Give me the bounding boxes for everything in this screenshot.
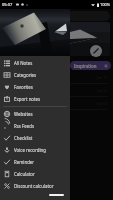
- staticText: Websites: [14, 111, 33, 117]
- staticText: Work: [8, 63, 19, 69]
- button[interactable]: Checklist: [0, 132, 70, 144]
- staticText: Rss Feeds: [14, 123, 35, 129]
- button[interactable]: Voice recording: [0, 144, 70, 156]
- button[interactable]: Inspiration: [70, 61, 111, 70]
- staticText: Search your notes: [13, 13, 49, 19]
- other: Search: [6, 14, 11, 19]
- staticText: Inspiration: [74, 63, 97, 69]
- staticText: Discount calculator: [14, 183, 54, 189]
- staticText: Reminder: [14, 159, 35, 165]
- staticText: Favorites: [14, 84, 33, 90]
- button[interactable]: Meeting notes: [0, 73, 113, 86]
- button[interactable]: Project ideas: [0, 99, 113, 112]
- staticText: Voice recording: [14, 147, 46, 153]
- button[interactable]: Categories: [0, 69, 70, 81]
- staticText: 100%: [100, 2, 111, 7]
- button[interactable]: New note: [90, 45, 102, 57]
- staticText: Project ideas: [5, 101, 31, 107]
- staticText: Shopping list: [5, 88, 31, 94]
- staticText: Meeting notes: [5, 75, 34, 81]
- button[interactable]: Rss Feeds: [0, 120, 70, 132]
- button[interactable]: Search: [3, 11, 110, 21]
- button[interactable]: Calculator: [0, 168, 70, 180]
- staticText: All Notes: [14, 60, 33, 66]
- button[interactable]: All Notes: [0, 57, 70, 69]
- staticText: Checklist: [14, 135, 33, 141]
- button[interactable]: Reminder: [0, 156, 70, 168]
- staticText: Calculator: [14, 171, 35, 177]
- button[interactable]: Work: [4, 61, 34, 70]
- button[interactable]: Export notes: [0, 93, 70, 105]
- button[interactable]: Shopping list: [0, 86, 113, 99]
- staticText: Categories: [14, 72, 37, 78]
- button[interactable]: Websites: [0, 108, 70, 120]
- button[interactable]: Favorites: [0, 81, 70, 93]
- button[interactable]: Discount calculator: [0, 180, 70, 192]
- staticText: Export notes: [14, 96, 41, 102]
- staticText: 05:07: [2, 2, 13, 7]
